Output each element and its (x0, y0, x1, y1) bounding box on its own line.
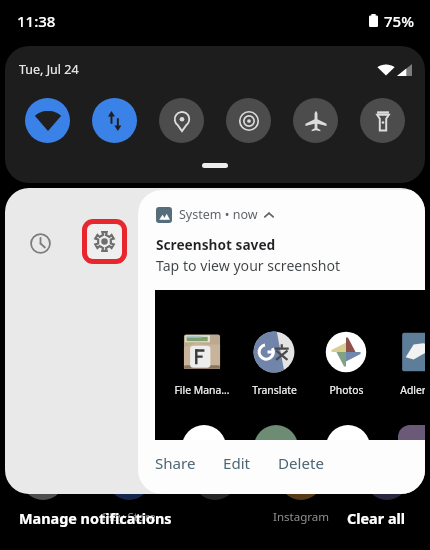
staticText: File Mana… (174, 383, 230, 397)
button[interactable]: Manage notifications (13, 503, 178, 535)
button[interactable]: Phone (0, 456, 86, 525)
staticText: Screenshot saved (156, 235, 276, 254)
staticText: Translate (252, 383, 297, 397)
button[interactable]: System • now (138, 190, 425, 494)
button[interactable]: Flashlight (360, 98, 405, 143)
button[interactable]: Cast (226, 98, 271, 143)
button[interactable]: Location (159, 98, 204, 143)
button[interactable]: Wi-Fi (25, 98, 70, 143)
staticText: System • now (179, 206, 258, 223)
button[interactable]: Play Store (86, 456, 172, 525)
staticText: Share (155, 453, 196, 474)
button[interactable]: Share (147, 448, 204, 479)
button[interactable]: Instagram (258, 456, 344, 525)
staticText: 75% (384, 11, 414, 31)
button[interactable]: Snooze (22, 225, 58, 261)
button[interactable]: Edit (215, 448, 259, 479)
button[interactable]: Camera (172, 456, 258, 525)
staticText: 11:38 (17, 11, 56, 31)
staticText: Manage notifications (19, 509, 172, 529)
staticText: Delete (278, 453, 324, 474)
staticText: Instagram (273, 509, 329, 525)
staticText: Adler N (400, 383, 425, 397)
button[interactable]: Settings (82, 219, 127, 264)
staticText: Photos (329, 383, 364, 397)
button[interactable]: Chrome (344, 456, 430, 525)
button[interactable]: Airplane mode (293, 98, 338, 143)
staticText: Tue, Jul 24 (19, 61, 79, 78)
staticText: Tap to view your screenshot (156, 256, 341, 275)
button[interactable]: Mobile data (92, 98, 137, 143)
staticText: Edit (223, 453, 251, 474)
button[interactable]: Delete (270, 448, 332, 479)
staticText: Clear all (347, 509, 406, 529)
button[interactable]: Clear all (341, 503, 412, 535)
staticText: Play Store (102, 509, 156, 525)
